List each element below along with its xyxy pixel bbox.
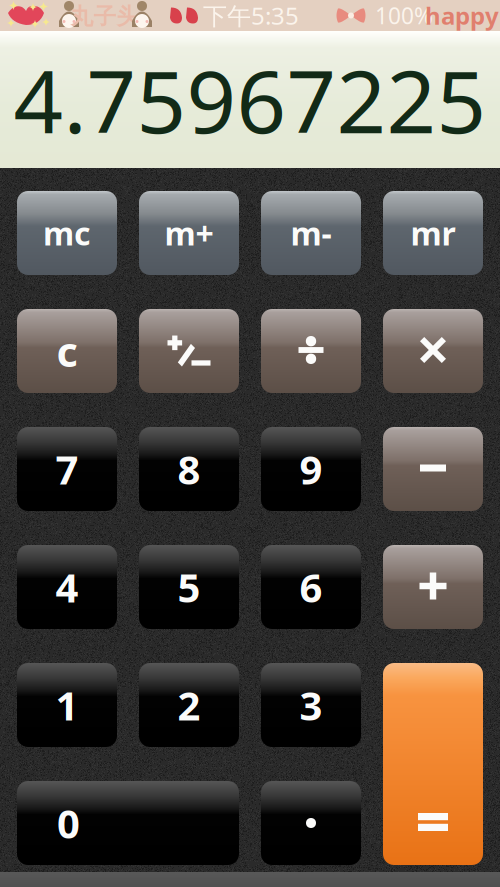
staticText: 0 xyxy=(57,796,80,849)
button[interactable]: 8 xyxy=(139,427,239,511)
staticText: c xyxy=(56,324,77,378)
staticText: 3 xyxy=(299,678,322,731)
button[interactable]: 5 xyxy=(139,545,239,629)
button[interactable]: Divide xyxy=(261,309,361,393)
staticText: 5 xyxy=(177,560,200,613)
button[interactable]: m- xyxy=(261,191,361,275)
button[interactable]: 2 xyxy=(139,663,239,747)
staticText: 丸子头 xyxy=(70,3,139,30)
staticText: happy xyxy=(425,0,499,31)
button[interactable]: 9 xyxy=(261,427,361,511)
button[interactable]: m+ xyxy=(139,191,239,275)
button[interactable]: 0 xyxy=(17,781,239,865)
staticText: 9 xyxy=(299,442,322,495)
staticText: 100% xyxy=(375,0,433,30)
staticText: mc xyxy=(43,212,91,254)
button[interactable]: 3 xyxy=(261,663,361,747)
button[interactable]: mc xyxy=(17,191,117,275)
button[interactable]: Minus xyxy=(383,427,483,511)
button[interactable]: mr xyxy=(383,191,483,275)
staticText: 8 xyxy=(177,442,200,495)
staticText: m+ xyxy=(164,212,213,254)
button[interactable]: c xyxy=(17,309,117,393)
button[interactable]: Plus minus xyxy=(139,309,239,393)
staticText: 4 xyxy=(55,560,78,613)
staticText: 4.75967225 xyxy=(13,42,486,157)
button[interactable]: Decimal point xyxy=(261,781,361,865)
staticText: 2 xyxy=(177,678,200,731)
staticText: m- xyxy=(290,212,331,254)
button[interactable]: 6 xyxy=(261,545,361,629)
staticText: mr xyxy=(410,212,455,254)
button[interactable]: Equals xyxy=(383,663,483,865)
button[interactable]: 7 xyxy=(17,427,117,511)
staticText: 7 xyxy=(55,442,78,495)
button[interactable]: 1 xyxy=(17,663,117,747)
staticText: 6 xyxy=(299,560,322,613)
button[interactable]: Plus xyxy=(383,545,483,629)
button[interactable]: Multiply xyxy=(383,309,483,393)
staticText: 1 xyxy=(55,678,78,731)
staticText: 下午5:35 xyxy=(203,0,299,31)
button[interactable]: 4 xyxy=(17,545,117,629)
